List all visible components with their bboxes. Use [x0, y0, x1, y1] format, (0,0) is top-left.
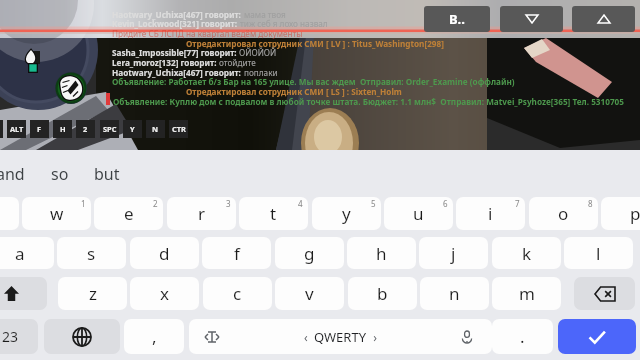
button[interactable]: Space [189, 319, 492, 354]
staticText: t [270, 202, 277, 225]
staticText: . [520, 325, 525, 348]
button[interactable]: a [0, 237, 54, 269]
button[interactable]: g [275, 237, 344, 269]
button[interactable]: v [275, 277, 344, 310]
staticText: d [159, 242, 170, 265]
button[interactable]: p [601, 197, 640, 230]
staticText: Lera_moroz[132] говорит: [112, 57, 219, 68]
staticText: l [596, 242, 601, 265]
button[interactable]: . [492, 319, 553, 354]
staticText: мама твоя [244, 9, 286, 20]
staticText: 5 [371, 198, 376, 209]
button[interactable]: m [492, 277, 561, 310]
button[interactable]: s [57, 237, 126, 269]
staticText: QWERTY [314, 328, 367, 346]
button[interactable]: N [146, 120, 165, 138]
staticText: 2 [153, 198, 158, 209]
staticText: n [449, 282, 460, 305]
staticText: отойдите [219, 57, 256, 68]
button[interactable]: Change keyboard [44, 319, 120, 354]
button[interactable]: but [94, 163, 120, 185]
staticText: CTR [172, 124, 186, 134]
button[interactable]: t [239, 197, 308, 230]
button[interactable]: Enter [558, 319, 636, 354]
button[interactable]: o [529, 197, 598, 230]
button[interactable]: b [348, 277, 417, 310]
staticText: Kevin_Lockwood[321] говорит: [112, 18, 240, 29]
staticText: поплаки [244, 67, 278, 78]
staticText: › [367, 329, 377, 345]
staticText: j [451, 242, 456, 265]
staticText: o [558, 202, 569, 225]
staticText: Отредактировал сотрудник СМИ [ LS ] : Si… [186, 86, 402, 97]
button[interactable]: Punch [55, 72, 87, 104]
staticText: H [60, 124, 66, 134]
staticText: ОЙОЙОЙ [239, 47, 277, 58]
button[interactable]: u [384, 197, 453, 230]
staticText: Sasha_Impossible[77] говорит: [112, 47, 239, 58]
staticText: x [160, 282, 169, 305]
button[interactable]: Chat [424, 6, 490, 32]
staticText: 7 [515, 198, 520, 209]
staticText: 3 [226, 198, 231, 209]
button[interactable]: j [419, 237, 488, 269]
button[interactable]: Volume down [500, 6, 563, 32]
staticText: v [305, 282, 314, 305]
button[interactable]: H [53, 120, 72, 138]
button[interactable]: z [58, 277, 127, 310]
staticText: Объявление: Работает б/з Бар на 165 улиц… [112, 76, 515, 87]
button[interactable]: 2 [76, 120, 95, 138]
staticText: Y [130, 124, 135, 134]
button[interactable]: ALT [7, 120, 26, 138]
button[interactable]: Backspace [574, 277, 635, 310]
staticText: and [0, 163, 25, 185]
staticText: a [15, 242, 25, 265]
staticText: ALT [10, 124, 24, 134]
button[interactable]: c [203, 277, 272, 310]
button[interactable]: CTR [169, 120, 188, 138]
button[interactable]: r [167, 197, 236, 230]
button[interactable]: Volume up [572, 6, 635, 32]
button[interactable]: d [130, 237, 199, 269]
button[interactable]: f [202, 237, 271, 269]
staticText: 4 [298, 198, 303, 209]
button[interactable]: x [130, 277, 199, 310]
button[interactable]: i [456, 197, 525, 230]
staticText: 2 [83, 124, 88, 134]
button[interactable]: and [0, 163, 25, 185]
button[interactable]: n [420, 277, 489, 310]
staticText: 8 [588, 198, 593, 209]
staticText: h [376, 242, 387, 265]
button[interactable]: e [94, 197, 163, 230]
staticText: Придите СБ ЛСПД на квартал ведём докумен… [112, 28, 303, 39]
button[interactable]: , [124, 319, 184, 354]
button[interactable]: q [0, 197, 19, 230]
staticText: e [124, 202, 134, 225]
staticText: u [413, 202, 424, 225]
staticText: s [87, 242, 96, 265]
button[interactable]: Shift [0, 277, 47, 310]
button[interactable]: ?123 [0, 319, 38, 354]
staticText: N [152, 124, 159, 134]
button[interactable]: l [564, 237, 633, 269]
staticText: f [234, 242, 240, 265]
button[interactable]: k [492, 237, 561, 269]
staticText: m [519, 282, 535, 305]
staticText: , [152, 325, 157, 348]
button[interactable]: Y [123, 120, 142, 138]
staticText: Отредактировал сотрудник СМИ [ LV ] : Ti… [186, 38, 444, 49]
staticText: i [488, 202, 493, 225]
button[interactable]: so [51, 163, 69, 185]
button[interactable]: SPC [100, 120, 119, 138]
button[interactable]: y [312, 197, 381, 230]
staticText: b [377, 282, 388, 305]
staticText: B.. [449, 10, 465, 28]
button[interactable]: w [22, 197, 91, 230]
button[interactable]: F [30, 120, 49, 138]
staticText: r [198, 202, 206, 225]
button[interactable]: h [347, 237, 416, 269]
staticText: p [630, 202, 640, 225]
staticText: but [94, 163, 120, 185]
staticText: Объявление: Куплю дом с подвалом в любой… [113, 96, 624, 107]
